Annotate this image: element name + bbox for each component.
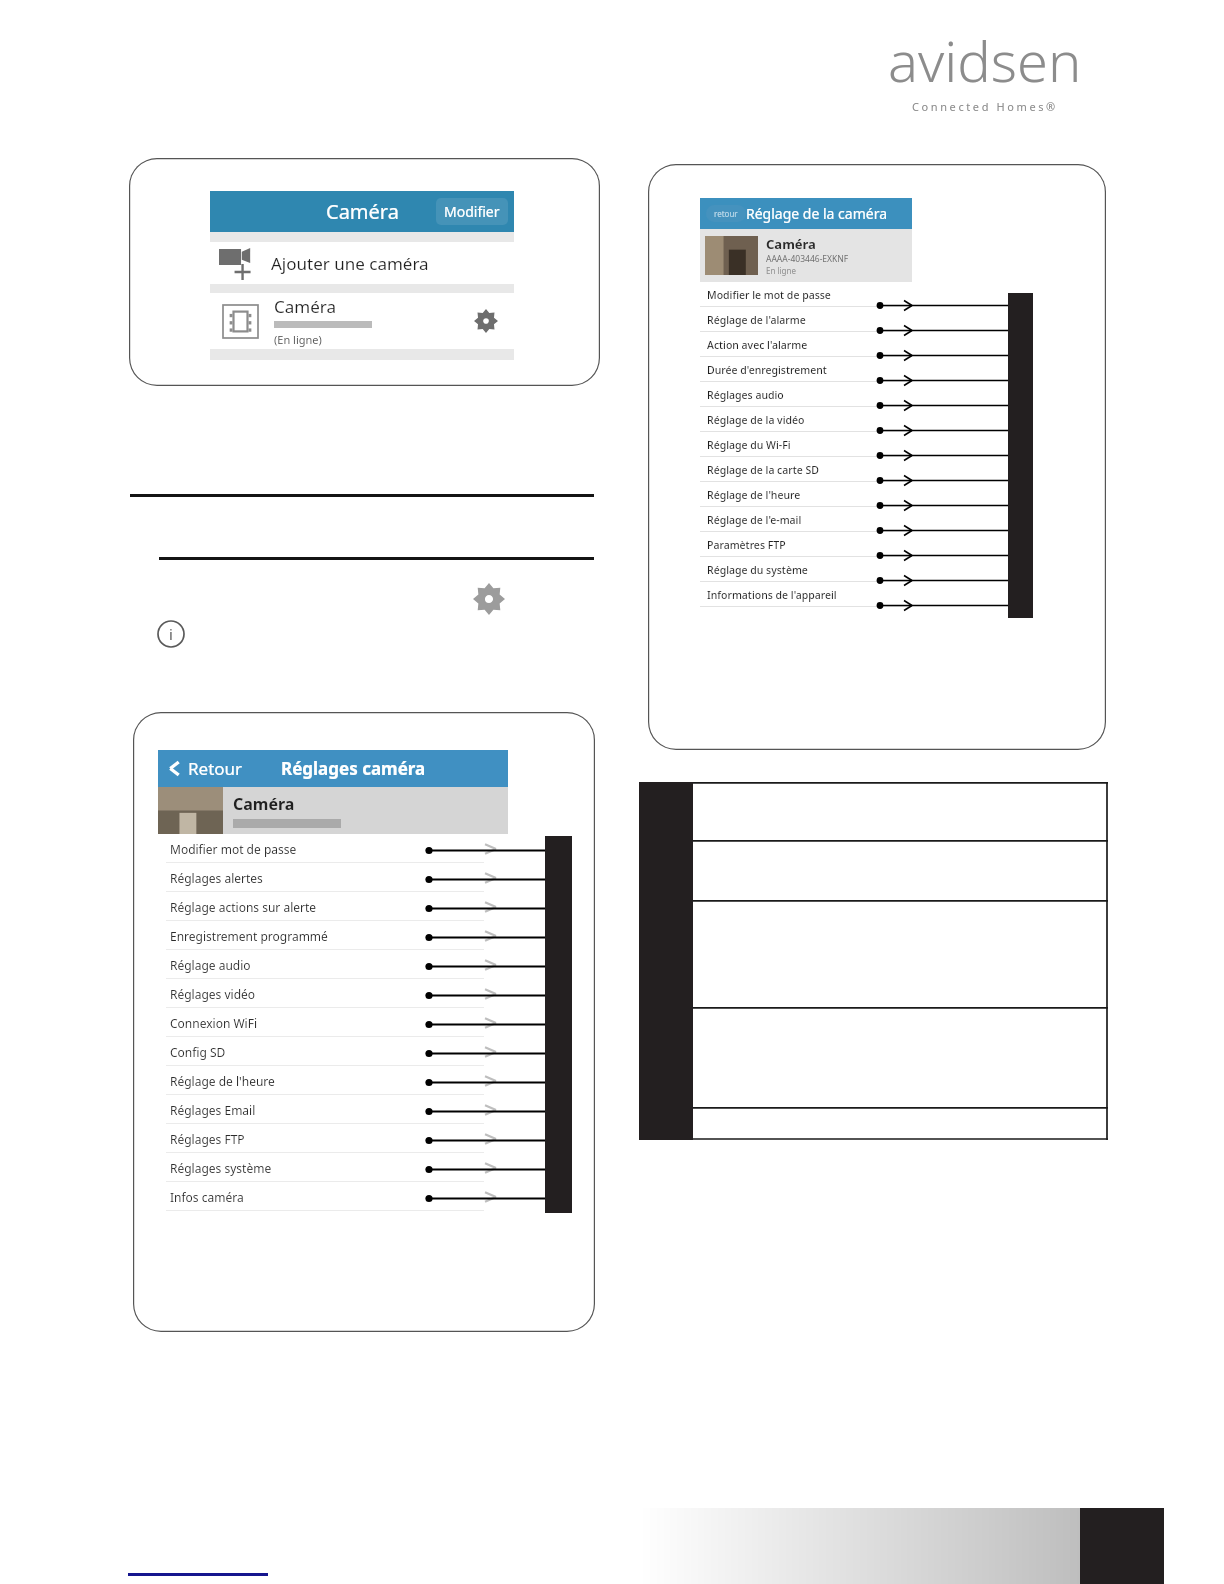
staticText: Réglage de l'alarme: [707, 313, 806, 327]
staticText: Réglages caméra: [281, 757, 426, 780]
button[interactable]: Action avec l'alarme: [700, 332, 912, 357]
button[interactable]: Information: [156, 619, 186, 649]
staticText: En ligne: [766, 265, 796, 276]
staticText: Réglages FTP: [170, 1131, 245, 1147]
button[interactable]: Réglages FTP: [158, 1124, 508, 1153]
button[interactable]: Enregistrement programmé: [158, 921, 508, 950]
staticText: Réglage de la carte SD: [707, 463, 819, 477]
staticText: Caméra: [233, 793, 295, 815]
button[interactable]: Infos caméra: [158, 1182, 508, 1211]
staticText: Caméra: [274, 295, 336, 318]
staticText: Caméra: [766, 235, 816, 253]
button[interactable]: Réglages Email: [158, 1095, 508, 1124]
button[interactable]: Réglage de l'alarme: [700, 307, 912, 332]
button[interactable]: Modifier: [436, 198, 508, 225]
staticText: Modifier mot de passe: [170, 841, 297, 857]
button[interactable]: Connexion WiFi: [158, 1008, 508, 1037]
button[interactable]: Réglage de la vidéo: [700, 407, 912, 432]
staticText: Réglages Email: [170, 1102, 256, 1118]
button[interactable]: retour: [700, 198, 912, 229]
staticText: Réglages alertes: [170, 870, 263, 886]
button[interactable]: Modifier le mot de passe: [700, 282, 912, 307]
staticText: Connected Homes®: [912, 99, 1058, 114]
staticText: Caméra: [326, 198, 399, 225]
button[interactable]: Réglage de l'e-mail: [700, 507, 912, 532]
staticText: retour: [714, 208, 738, 219]
staticText: Réglages vidéo: [170, 986, 256, 1002]
staticText: Informations de l'appareil: [707, 588, 837, 602]
staticText: Enregistrement programmé: [170, 928, 328, 944]
button[interactable]: Informations de l'appareil: [700, 582, 912, 607]
button[interactable]: Réglages vidéo: [158, 979, 508, 1008]
staticText: Modifier: [444, 202, 500, 221]
button[interactable]: Réglages caméra: [468, 303, 504, 339]
staticText: Durée d'enregistrement: [707, 363, 827, 377]
button[interactable]: Réglages système: [158, 1153, 508, 1182]
button[interactable]: Réglage du système: [700, 557, 912, 582]
staticText: Réglages audio: [707, 388, 784, 402]
button[interactable]: Réglage de l'heure: [700, 482, 912, 507]
button[interactable]: Réglage actions sur alerte: [158, 892, 508, 921]
staticText: Infos caméra: [170, 1189, 244, 1205]
staticText: Réglage audio: [170, 957, 251, 973]
button[interactable]: Modifier mot de passe: [158, 834, 508, 863]
staticText: Réglages système: [170, 1160, 272, 1176]
button[interactable]: Réglages: [471, 581, 507, 617]
staticText: Réglage de l'e-mail: [707, 513, 802, 527]
staticText: Réglage de l'heure: [170, 1073, 275, 1089]
staticText: i: [169, 624, 173, 644]
button[interactable]: Réglage audio: [158, 950, 508, 979]
button[interactable]: Réglage du Wi-Fi: [700, 432, 912, 457]
button[interactable]: Réglage de la carte SD: [700, 457, 912, 482]
button[interactable]: Réglages audio: [700, 382, 912, 407]
button[interactable]: retour: [706, 205, 746, 222]
staticText: Retour: [188, 757, 243, 780]
staticText: Réglage du système: [707, 563, 808, 577]
staticText: Action avec l'alarme: [707, 338, 808, 352]
button[interactable]: Ajouter une caméra: [210, 242, 514, 284]
staticText: avidsen: [888, 22, 1082, 98]
staticText: (En ligne): [274, 332, 322, 347]
button[interactable]: Réglage de l'heure: [158, 1066, 508, 1095]
staticText: AAAA-403446-EXKNF: [766, 253, 849, 265]
button[interactable]: Caméra: [210, 293, 514, 349]
button[interactable]: Paramètres FTP: [700, 532, 912, 557]
staticText: Ajouter une caméra: [271, 252, 429, 275]
staticText: Config SD: [170, 1044, 226, 1060]
button[interactable]: Réglages alertes: [158, 863, 508, 892]
staticText: Réglage actions sur alerte: [170, 899, 317, 915]
staticText: Réglage du Wi-Fi: [707, 438, 791, 452]
button[interactable]: Config SD: [158, 1037, 508, 1066]
staticText: Modifier le mot de passe: [707, 288, 831, 302]
button[interactable]: Caméra: [210, 191, 514, 232]
staticText: Réglage de l'heure: [707, 488, 801, 502]
staticText: Réglage de la caméra: [746, 204, 887, 223]
staticText: Réglage de la vidéo: [707, 413, 805, 427]
staticText: Paramètres FTP: [707, 538, 786, 552]
button[interactable]: Retour: [158, 750, 508, 787]
button[interactable]: Durée d'enregistrement: [700, 357, 912, 382]
staticText: Connexion WiFi: [170, 1015, 258, 1031]
